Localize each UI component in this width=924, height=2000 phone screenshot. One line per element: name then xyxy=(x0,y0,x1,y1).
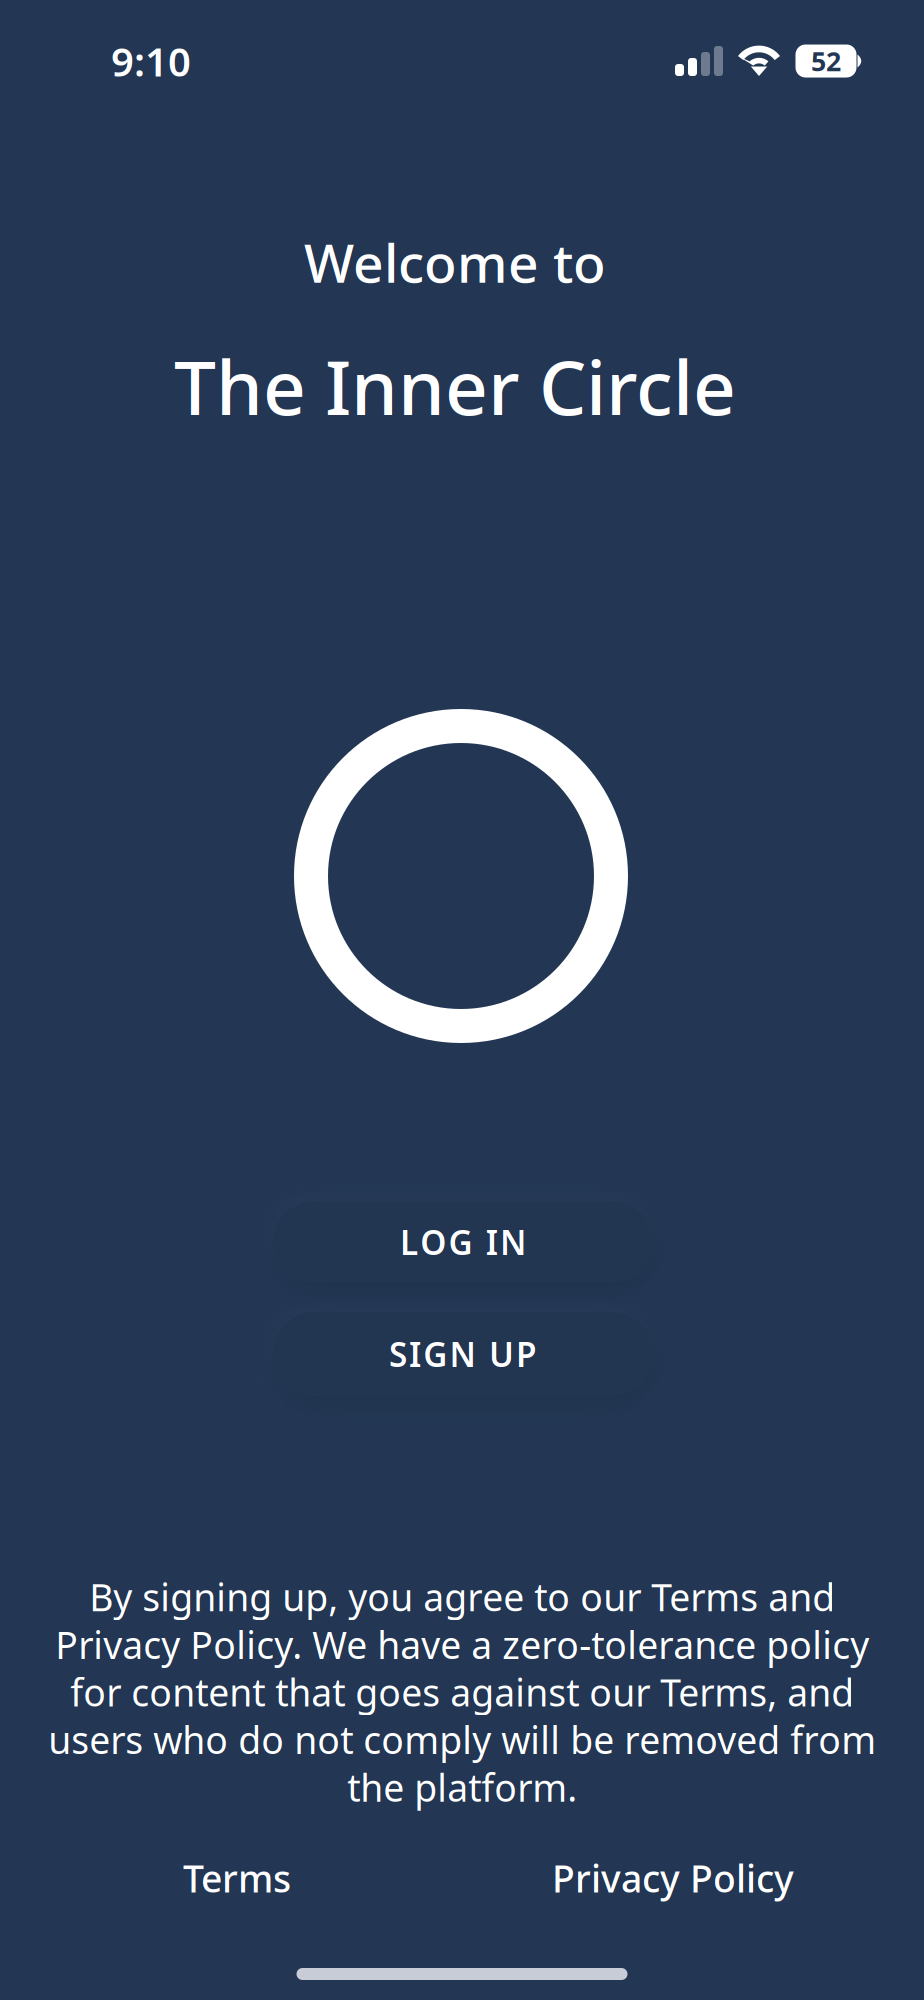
staticText: I xyxy=(409,1332,421,1376)
staticText: O xyxy=(420,1220,446,1264)
staticText: N xyxy=(500,1220,526,1264)
staticText: Privacy Policy xyxy=(552,1853,794,1903)
staticText: 52 xyxy=(811,43,841,79)
staticText: U xyxy=(489,1332,514,1376)
staticText: I xyxy=(486,1220,498,1264)
staticText: By signing up, you agree to our Terms an… xyxy=(48,1572,876,1812)
staticText: N xyxy=(449,1332,475,1376)
staticText: G xyxy=(423,1332,447,1376)
staticText: P xyxy=(516,1332,537,1376)
staticText: G xyxy=(448,1220,472,1264)
staticText: Welcome to xyxy=(304,227,606,297)
button[interactable]: L xyxy=(273,1201,653,1282)
staticText: S xyxy=(389,1332,407,1376)
button[interactable]: S xyxy=(273,1312,653,1396)
staticText: The Inner Circle xyxy=(174,336,736,436)
button[interactable]: Terms xyxy=(147,1846,327,1910)
staticText: Terms xyxy=(183,1853,291,1903)
staticText: 9:10 xyxy=(111,34,191,87)
staticText: L xyxy=(400,1220,418,1264)
button[interactable]: Privacy Policy xyxy=(523,1846,823,1910)
